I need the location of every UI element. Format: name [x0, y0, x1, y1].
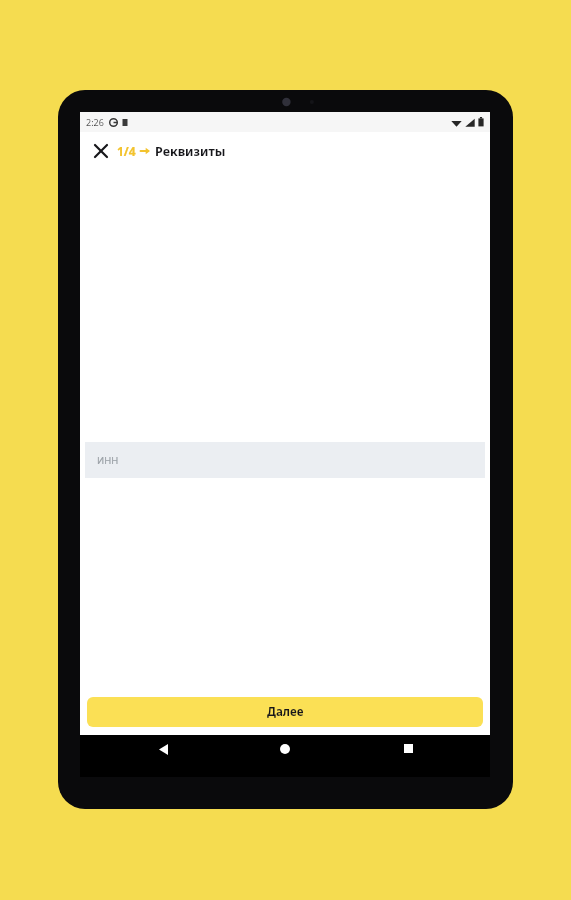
- staticText: 1/4: [117, 143, 136, 159]
- button[interactable]: Close: [89, 139, 113, 163]
- button[interactable]: Recents: [368, 735, 448, 777]
- button[interactable]: Home: [245, 735, 325, 777]
- button[interactable]: Далее: [87, 697, 483, 727]
- staticText: 2:26: [86, 116, 104, 128]
- staticText: Далее: [267, 704, 304, 720]
- button[interactable]: ИНН: [85, 442, 485, 478]
- staticText: ИНН: [97, 454, 119, 467]
- button[interactable]: Back: [123, 735, 203, 777]
- staticText: Реквизиты: [155, 143, 226, 160]
